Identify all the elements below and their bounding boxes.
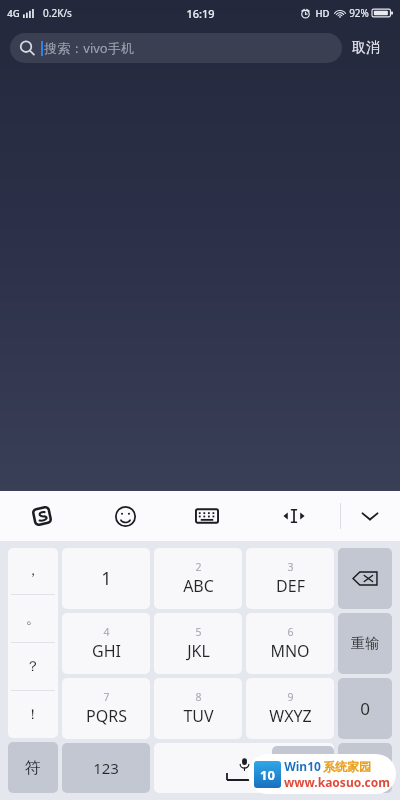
staticText: 3 — [287, 560, 294, 574]
button[interactable]: 3 — [246, 548, 334, 609]
staticText: ？ — [26, 658, 40, 676]
staticText: DEF — [276, 575, 305, 597]
staticText: 10 — [260, 766, 275, 784]
staticText: 搜索：vivo手机 — [44, 39, 134, 57]
staticText: ABC — [183, 575, 214, 597]
staticText: 4 — [103, 625, 110, 639]
staticText: JKL — [187, 640, 210, 662]
button[interactable]: 重输 — [338, 613, 392, 674]
button[interactable]: 0 — [338, 678, 392, 739]
button[interactable]: 4 — [62, 613, 150, 674]
staticText: 5 — [195, 625, 202, 639]
button[interactable]: 6 — [246, 613, 334, 674]
staticText: 6 — [287, 625, 294, 639]
staticText: Win10 — [284, 758, 321, 774]
staticText: 2 — [195, 560, 202, 574]
button[interactable]: 7 — [62, 678, 150, 739]
staticText: ， — [26, 562, 40, 580]
button[interactable]: ！ — [8, 691, 58, 738]
staticText: www.kaosuo.com — [284, 774, 390, 790]
staticText: WXYZ — [269, 705, 312, 727]
button[interactable]: Sogou input method — [0, 491, 84, 541]
staticText: GHI — [92, 640, 121, 662]
staticText: 8 — [195, 690, 202, 704]
button[interactable]: 123 — [62, 743, 150, 793]
staticText: 92% — [349, 6, 369, 20]
staticText: 9 — [287, 690, 294, 704]
staticText: 16:19 — [186, 6, 215, 21]
button[interactable]: 搜索 — [338, 743, 392, 793]
staticText: 7 — [103, 690, 110, 704]
button[interactable]: 2 — [154, 548, 242, 609]
staticText: HD — [315, 7, 330, 20]
button[interactable]: 9 — [246, 678, 334, 739]
button[interactable]: Space / voice input — [154, 743, 334, 793]
staticText: 0.2K/s — [43, 6, 72, 20]
button[interactable]: 搜索：vivo手机 — [10, 33, 342, 63]
button[interactable]: Move cursor — [248, 491, 340, 541]
staticText: ！ — [26, 706, 40, 724]
staticText: 系统家园 — [323, 759, 371, 774]
staticText: 123 — [93, 758, 119, 778]
staticText: TUV — [183, 705, 214, 727]
staticText: 符 — [25, 758, 41, 778]
staticText: 搜索 — [351, 759, 379, 777]
staticText: 中 — [295, 760, 311, 780]
staticText: 重输 — [351, 635, 379, 653]
staticText: PQRS — [86, 705, 127, 727]
button[interactable]: 8 — [154, 678, 242, 739]
staticText: 4G — [7, 7, 20, 20]
staticText: MNO — [270, 640, 310, 662]
staticText: 0 — [360, 697, 370, 720]
button[interactable]: Emoji — [84, 491, 166, 541]
button[interactable]: ？ — [8, 643, 58, 690]
button[interactable]: Backspace — [338, 548, 392, 609]
staticText: 。 — [26, 610, 40, 628]
button[interactable]: 中 — [272, 746, 334, 793]
button[interactable]: 5 — [154, 613, 242, 674]
staticText: 取消 — [352, 39, 380, 57]
button[interactable]: 1 — [62, 548, 150, 609]
button[interactable]: 取消 — [342, 33, 390, 63]
button[interactable]: ， — [8, 548, 58, 594]
button[interactable]: 符 — [8, 742, 58, 793]
button[interactable]: Hide keyboard — [340, 491, 400, 541]
staticText: 1 — [101, 566, 112, 591]
button[interactable]: Keyboard layout — [166, 491, 248, 541]
button[interactable]: 。 — [8, 595, 58, 642]
